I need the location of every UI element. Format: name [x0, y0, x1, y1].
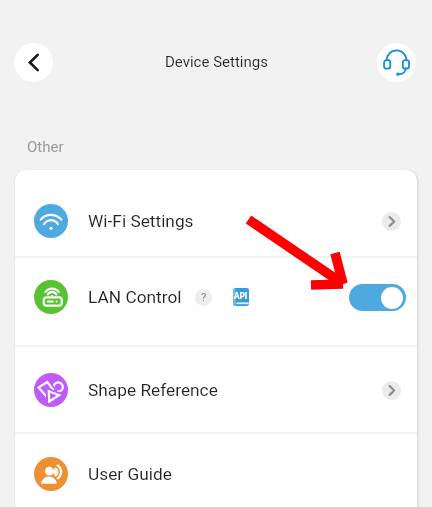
button[interactable]: User Guide — [15, 452, 417, 496]
staticText: Shape Reference — [88, 380, 218, 400]
button[interactable]: LAN Control toggle — [349, 284, 406, 311]
staticText: Other — [27, 138, 64, 156]
staticText: User Guide — [88, 464, 172, 484]
staticText: API — [234, 291, 248, 301]
button[interactable]: API documentation — [233, 288, 249, 306]
staticText: Device Settings — [165, 53, 268, 71]
button[interactable]: LAN Control — [15, 275, 417, 319]
button[interactable]: Open — [382, 212, 401, 231]
button[interactable]: Wi-Fi Settings — [15, 199, 417, 243]
staticText: ? — [201, 291, 207, 304]
button[interactable]: Help — [195, 289, 212, 306]
staticText: LAN Control — [88, 287, 182, 307]
staticText: Wi-Fi Settings — [88, 211, 194, 231]
button[interactable]: Open — [382, 381, 401, 400]
button[interactable]: Customer support — [377, 43, 416, 82]
button[interactable]: Shape Reference — [15, 368, 417, 412]
button[interactable]: Back — [14, 43, 53, 82]
